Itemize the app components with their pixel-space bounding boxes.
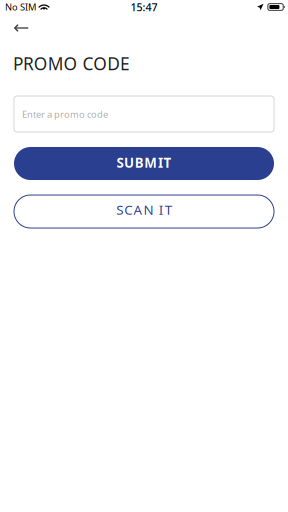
staticText: Enter a promo code xyxy=(22,108,108,120)
staticText: PROMO CODE xyxy=(13,52,130,75)
button[interactable]: SCAN IT xyxy=(14,195,274,228)
button[interactable]: Back xyxy=(0,14,60,42)
staticText: No SIM xyxy=(5,1,36,13)
staticText: SCAN IT xyxy=(116,201,172,218)
button[interactable]: Enter a promo code xyxy=(14,96,274,132)
button[interactable]: SUBMIT xyxy=(14,147,274,180)
staticText: 15:47 xyxy=(130,0,157,14)
staticText: SUBMIT xyxy=(116,154,171,171)
